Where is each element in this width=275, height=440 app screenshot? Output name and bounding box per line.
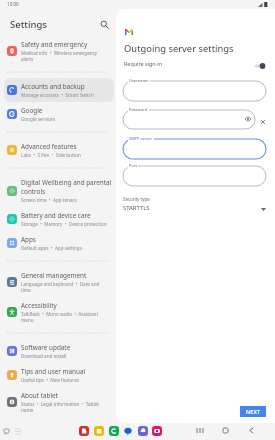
staticText: alerts — [21, 56, 34, 62]
button[interactable]: Back — [245, 424, 257, 436]
button[interactable]: Accounts and backup — [4, 78, 114, 102]
staticText: menu — [21, 317, 34, 323]
staticText: Medical info • Wireless emergency — [21, 50, 98, 56]
button[interactable]: General management — [4, 267, 114, 297]
staticText: Storage • Memory • Device protection — [21, 221, 107, 227]
button[interactable]: Software update — [4, 339, 114, 363]
staticText: Battery and device care — [21, 211, 91, 220]
button[interactable]: Select security type — [258, 204, 268, 214]
button[interactable]: Safety and emergency — [4, 36, 114, 66]
staticText: Download and install — [21, 353, 67, 359]
staticText: Useful tips • New features — [21, 377, 79, 383]
button[interactable]: SMTP server — [123, 139, 266, 159]
button[interactable]: Digital Wellbeing and parental controls — [4, 174, 114, 207]
staticText: Screen time • App timers — [21, 197, 77, 203]
staticText: Settings — [10, 18, 47, 31]
button[interactable]: App — [152, 426, 162, 436]
button[interactable]: Google — [4, 102, 114, 126]
button[interactable]: Advanced features — [4, 138, 114, 162]
staticText: TalkBack • Mono audio • Assistant — [21, 311, 99, 317]
staticText: SMTP server — [129, 136, 153, 141]
staticText: time — [21, 287, 31, 293]
button[interactable]: All apps — [12, 425, 24, 437]
staticText: Apps — [21, 235, 36, 244]
button[interactable]: Screenshot — [0, 425, 12, 437]
button[interactable]: Tips and user manual — [4, 363, 114, 387]
staticText: Accounts and backup — [21, 82, 85, 91]
button[interactable]: Recents — [194, 424, 206, 436]
staticText: NEXT — [246, 408, 261, 416]
button[interactable]: Battery and device care — [4, 207, 114, 231]
button[interactable]: Port — [123, 166, 266, 186]
staticText: Digital Wellbeing and parental controls — [21, 178, 112, 196]
staticText: Accessibility — [21, 301, 57, 310]
button[interactable]: App — [94, 426, 104, 436]
button[interactable]: Require sign-in — [253, 61, 275, 71]
button[interactable]: App — [109, 426, 119, 436]
button[interactable]: NEXT — [240, 406, 266, 417]
staticText: Labs • S Pen • Side button — [21, 152, 81, 158]
button[interactable]: Show password — [243, 114, 253, 124]
staticText: 10:00 — [7, 1, 19, 7]
staticText: Require sign-in — [124, 60, 163, 67]
staticText: Outgoing server settings — [124, 42, 234, 55]
staticText: Software update — [21, 343, 71, 352]
staticText: Google services — [21, 116, 55, 122]
button[interactable]: Clear password — [258, 117, 268, 127]
staticText: Username — [129, 78, 149, 83]
button[interactable]: Accessibility — [4, 297, 114, 327]
button[interactable]: App — [138, 426, 148, 436]
button[interactable]: Apps — [4, 231, 114, 255]
button[interactable]: Home — [219, 424, 231, 436]
staticText: Port — [129, 163, 137, 168]
button[interactable]: Password — [123, 110, 255, 129]
staticText: Default apps • App settings — [21, 245, 82, 251]
staticText: Security type — [123, 196, 150, 202]
staticText: Manage accounts • Smart Switch — [21, 92, 94, 98]
staticText: Status • Legal information • Tablet — [21, 401, 99, 407]
staticText: Safety and emergency — [21, 40, 88, 49]
staticText: Password — [129, 107, 148, 112]
button[interactable]: App — [79, 426, 89, 436]
staticText: name — [21, 407, 34, 413]
staticText: General management — [21, 271, 87, 280]
staticText: STARTTLS — [123, 204, 150, 212]
button[interactable]: Username — [123, 81, 266, 101]
staticText: Advanced features — [21, 142, 77, 151]
staticText: Google — [21, 106, 43, 115]
staticText: About tablet — [21, 391, 58, 400]
button[interactable]: Search settings — [97, 17, 111, 31]
button[interactable]: App — [123, 426, 133, 436]
staticText: Language and keyboard • Date and — [21, 281, 100, 287]
button[interactable]: About tablet — [4, 387, 114, 417]
staticText: Tips and user manual — [21, 367, 86, 376]
